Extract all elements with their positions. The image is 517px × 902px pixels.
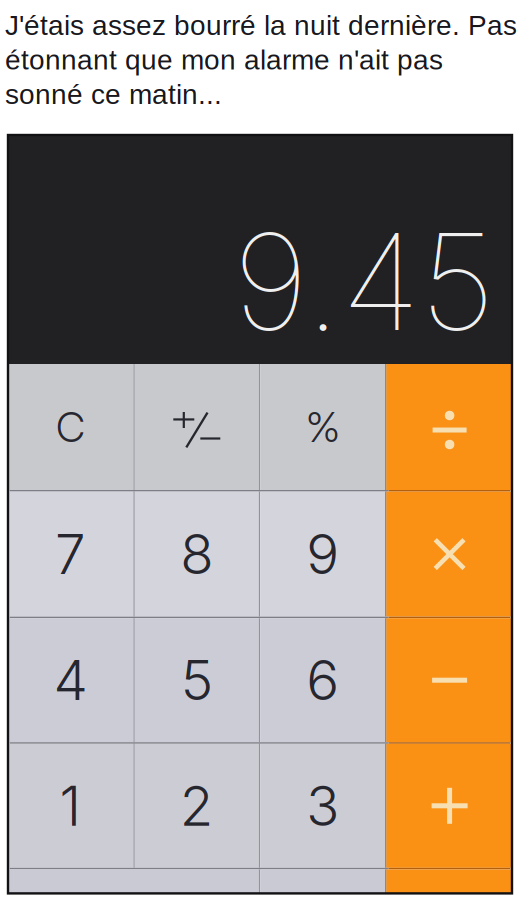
- button[interactable]: %: [260, 364, 385, 490]
- button[interactable]: Plus or minus: [135, 364, 259, 490]
- staticText: étonnant que mon alarme n'ait pas: [5, 44, 443, 75]
- button[interactable]: C: [7, 364, 133, 490]
- staticText: J'étais assez bourré la nuit dernière. P…: [5, 10, 517, 41]
- button[interactable]: 7: [7, 492, 133, 617]
- button[interactable]: [260, 869, 385, 893]
- staticText: 8: [180, 521, 213, 587]
- button[interactable]: 6: [260, 618, 385, 742]
- button[interactable]: 4: [7, 618, 133, 742]
- staticText: 9.45: [233, 201, 495, 362]
- staticText: 4: [53, 647, 87, 713]
- button[interactable]: Equals: [387, 869, 513, 893]
- button[interactable]: 1: [7, 744, 133, 868]
- staticText: sonné ce matin...: [5, 79, 222, 110]
- staticText: 9: [306, 521, 339, 587]
- button[interactable]: Add: [387, 744, 513, 868]
- button[interactable]: 8: [135, 492, 259, 617]
- staticText: 5: [181, 647, 213, 713]
- button[interactable]: 3: [260, 744, 385, 868]
- staticText: 1: [59, 773, 81, 839]
- button[interactable]: 9: [260, 492, 385, 617]
- button[interactable]: Subtract: [387, 618, 513, 742]
- button[interactable]: Multiply: [387, 492, 513, 617]
- staticText: 2: [180, 773, 214, 839]
- staticText: %: [306, 402, 340, 452]
- staticText: 3: [306, 773, 339, 839]
- staticText: 7: [55, 521, 86, 587]
- staticText: 6: [306, 647, 339, 713]
- button[interactable]: Divide: [387, 364, 513, 490]
- button[interactable]: [7, 869, 259, 893]
- button[interactable]: 5: [135, 618, 259, 742]
- button[interactable]: 2: [135, 744, 259, 868]
- staticText: C: [56, 402, 85, 452]
